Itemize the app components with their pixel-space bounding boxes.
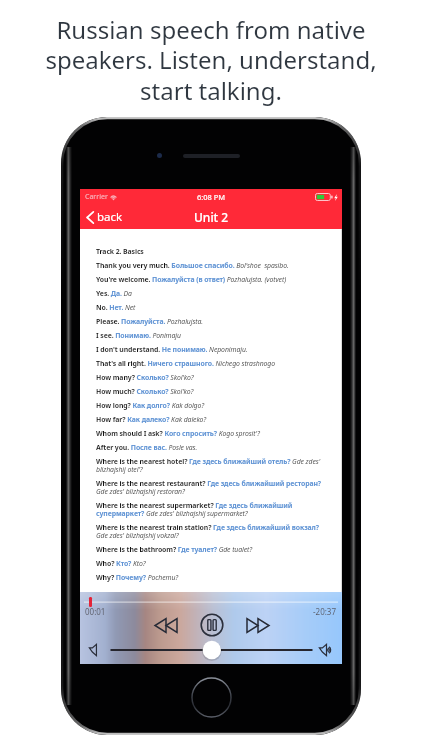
staticText: Russian speech from native speakers. Lis… <box>22 13 400 107</box>
button[interactable]: Pause <box>198 611 225 638</box>
button[interactable]: After you. После вас. Posle vas. <box>96 443 326 452</box>
staticText: -20:37 <box>313 606 337 617</box>
staticText: Track 2. Basics <box>96 247 326 256</box>
button[interactable]: Volume up <box>316 642 334 658</box>
button[interactable]: How far? Как далеко? Kak daleko? <box>96 415 326 424</box>
button[interactable]: How many? Сколько? Skol'ko? <box>96 373 326 382</box>
button[interactable]: How long? Как долго? Kak dolgo? <box>96 401 326 410</box>
button[interactable]: Who? Кто? Kto? <box>96 559 326 568</box>
button[interactable]: That's all right. Ничего страшного. Nich… <box>96 359 326 368</box>
button[interactable]: back <box>80 207 131 227</box>
staticText: Carrier <box>85 192 108 202</box>
button[interactable]: Whom should I ask? Кого спросить? Kogo s… <box>96 429 326 438</box>
button[interactable]: Volume down <box>86 642 100 658</box>
button[interactable]: Where is the nearest hotel? Где здесь бл… <box>96 457 326 474</box>
button[interactable]: Thank you very much. Большое спасибо. Bo… <box>96 261 326 270</box>
button[interactable]: Why? Почему? Pochemu? <box>96 573 326 582</box>
button[interactable]: How much? Сколько? Skol'ko? <box>96 387 326 396</box>
button[interactable]: I see. Понимаю. Ponimaju <box>96 331 326 340</box>
button[interactable]: Where is the nearest train station? Где … <box>96 523 326 540</box>
button[interactable]: You're welcome. Пожалуйста (в ответ) Poz… <box>96 275 326 284</box>
button[interactable]: Where is the nearest restaurant? Где зде… <box>96 479 326 496</box>
button[interactable]: Rewind <box>152 612 180 638</box>
button[interactable]: Please. Пожалуйста. Pozhalujsta. <box>96 317 326 326</box>
staticText: 6:08 PM <box>197 192 226 202</box>
button[interactable]: I don't understand. Не понимаю. Neponima… <box>96 345 326 354</box>
button[interactable]: No. Нет. Net <box>96 303 326 312</box>
button[interactable]: Where is the nearest supermarket? Где зд… <box>96 501 326 518</box>
staticText: back <box>97 209 123 225</box>
staticText: Unit 2 <box>194 209 229 225</box>
button[interactable]: Yes. Да. Da <box>96 289 326 298</box>
button[interactable]: Where is the bathroom? Где туалет? Gde t… <box>96 545 326 554</box>
staticText: 00:01 <box>85 606 106 617</box>
button[interactable]: Fast forward <box>244 612 272 638</box>
